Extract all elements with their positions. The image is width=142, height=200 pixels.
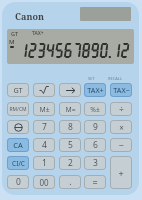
button[interactable]: M± <box>33 102 55 116</box>
button[interactable]: ÷ <box>110 102 132 116</box>
staticText: 0 <box>16 176 21 188</box>
staticText: 6 <box>93 139 98 151</box>
button[interactable]: 5 <box>59 138 81 152</box>
staticText: = <box>92 176 98 188</box>
other: Currency conversion <box>14 123 23 132</box>
staticText: Canon <box>15 10 44 22</box>
staticText: 00 <box>39 177 49 188</box>
staticText: ÷ <box>119 103 124 115</box>
staticText: TAX+ <box>32 30 44 37</box>
button[interactable]: . <box>59 175 81 189</box>
staticText: SET <box>88 76 95 81</box>
button[interactable]: GT <box>7 83 29 97</box>
button[interactable]: RM/CM <box>7 102 29 116</box>
button[interactable]: + <box>110 156 132 189</box>
other: Square root <box>39 85 49 95</box>
staticText: GT <box>13 85 23 95</box>
staticText: . <box>69 176 72 188</box>
staticText: GT <box>11 30 19 37</box>
staticText: RECALL <box>108 76 122 81</box>
button[interactable]: Square root <box>33 83 55 97</box>
button[interactable]: TAX+ <box>84 83 106 97</box>
staticText: 9 <box>93 121 98 133</box>
button[interactable]: 7 <box>33 120 55 134</box>
other: Backspace <box>65 85 76 96</box>
staticText: 1 <box>42 157 47 169</box>
button[interactable]: − <box>110 138 132 152</box>
button[interactable]: CI/C <box>7 156 29 170</box>
button[interactable]: = <box>84 175 106 189</box>
button[interactable]: 0 <box>7 175 29 189</box>
staticText: 8 <box>68 121 73 133</box>
staticText: M± <box>39 105 50 114</box>
button[interactable]: CA <box>7 138 29 152</box>
button[interactable]: Backspace <box>59 83 81 97</box>
staticText: 4 <box>42 139 47 151</box>
button[interactable]: 4 <box>33 138 55 152</box>
staticText: CA <box>13 140 23 150</box>
staticText: + <box>118 167 124 179</box>
button[interactable]: 3 <box>84 156 106 170</box>
staticText: M= <box>65 105 76 114</box>
button[interactable]: 1 <box>33 156 55 170</box>
button[interactable]: 8 <box>59 120 81 134</box>
button[interactable]: 2 <box>59 156 81 170</box>
staticText: 5 <box>68 139 73 151</box>
button[interactable]: 9 <box>84 120 106 134</box>
staticText: %± <box>90 105 100 114</box>
button[interactable]: Currency conversion <box>7 120 29 134</box>
staticText: M <box>9 38 15 46</box>
button[interactable]: 00 <box>33 175 55 189</box>
staticText: RM/CM <box>9 106 27 113</box>
button[interactable]: 6 <box>84 138 106 152</box>
staticText: 7 <box>42 121 47 133</box>
staticText: TAX− <box>113 85 130 95</box>
staticText: − <box>118 139 124 151</box>
staticText: × <box>119 122 124 133</box>
staticText: TAX+ <box>87 85 104 95</box>
button[interactable]: M= <box>59 102 81 116</box>
staticText: 3 <box>93 157 98 169</box>
button[interactable]: × <box>110 120 132 134</box>
staticText: 2 <box>68 157 73 169</box>
staticText: CI/C <box>12 159 25 168</box>
button[interactable]: %± <box>84 102 106 116</box>
button[interactable]: TAX− <box>110 83 132 97</box>
